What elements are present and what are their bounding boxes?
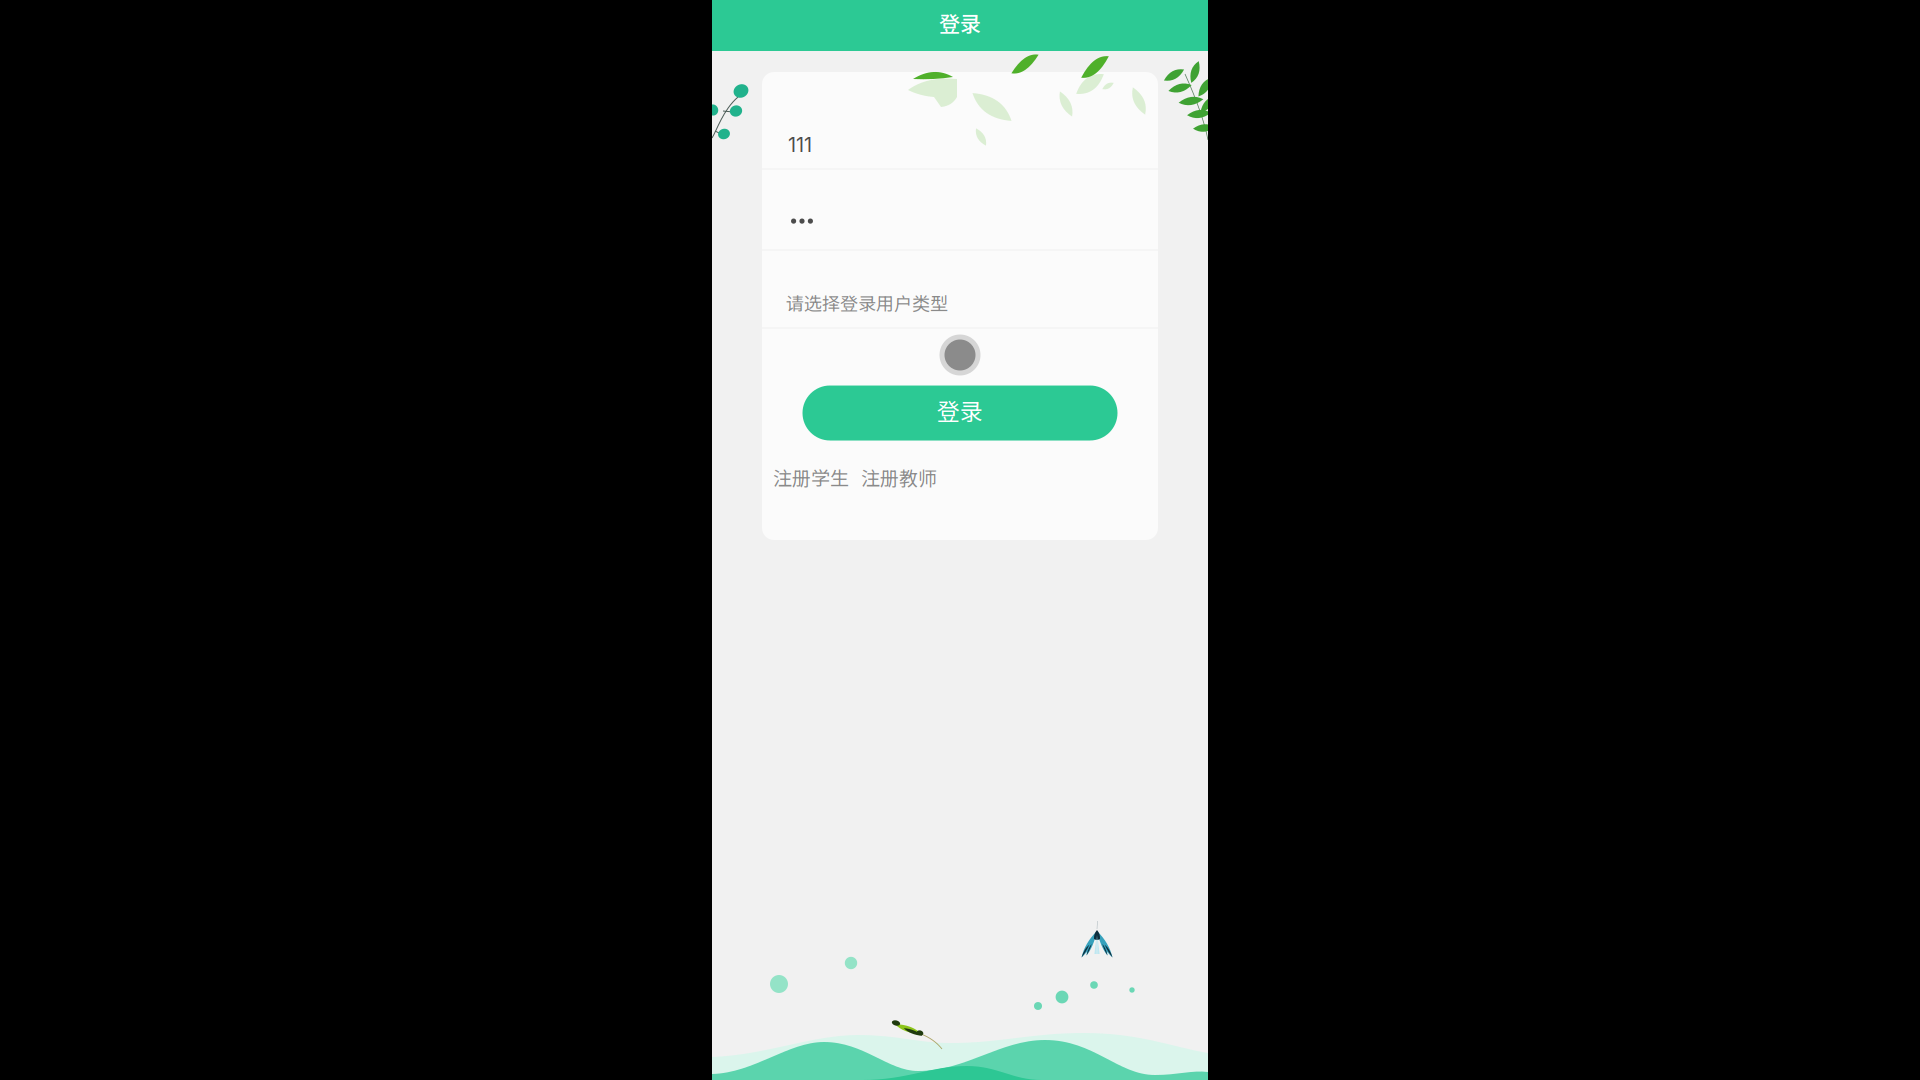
staticText: 注册教师	[861, 463, 937, 491]
button[interactable]: 密码	[762, 169, 1158, 249]
staticText: 111	[788, 132, 812, 157]
button[interactable]: 注册学生	[773, 463, 855, 491]
button[interactable]: 登录	[802, 385, 1117, 440]
staticText: 登录	[937, 393, 983, 427]
button[interactable]: 注册教师	[855, 463, 937, 491]
button[interactable]: 请选择登录用户类型	[762, 250, 1158, 327]
staticText: 登录	[939, 7, 981, 38]
staticText: 请选择登录用户类型	[786, 289, 948, 316]
staticText: 注册学生	[773, 463, 849, 491]
button[interactable]: 111	[762, 71, 1158, 168]
